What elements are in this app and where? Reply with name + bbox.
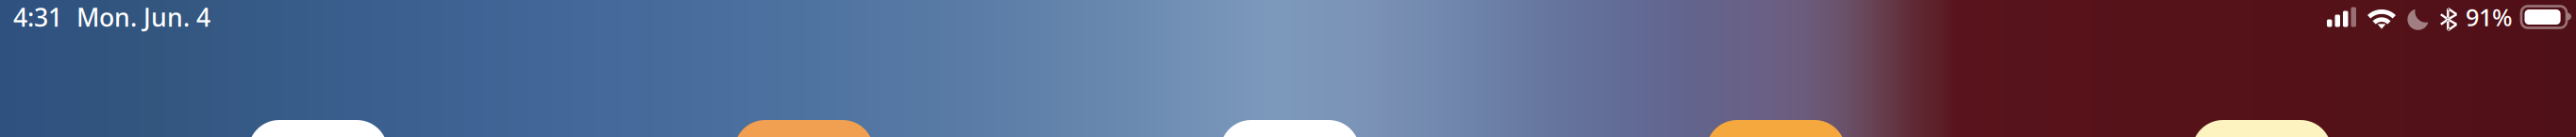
button[interactable]: App 3 [1220, 120, 1360, 137]
staticText: Mon. Jun. 4 [76, 0, 210, 34]
button[interactable]: App 4 [1706, 120, 1846, 137]
staticText: 91% [2466, 1, 2513, 33]
button[interactable]: App 5 [2192, 120, 2332, 137]
button[interactable]: App 2 [734, 120, 874, 137]
button[interactable]: App 1 [248, 120, 388, 137]
staticText: 4:31 [13, 0, 62, 34]
